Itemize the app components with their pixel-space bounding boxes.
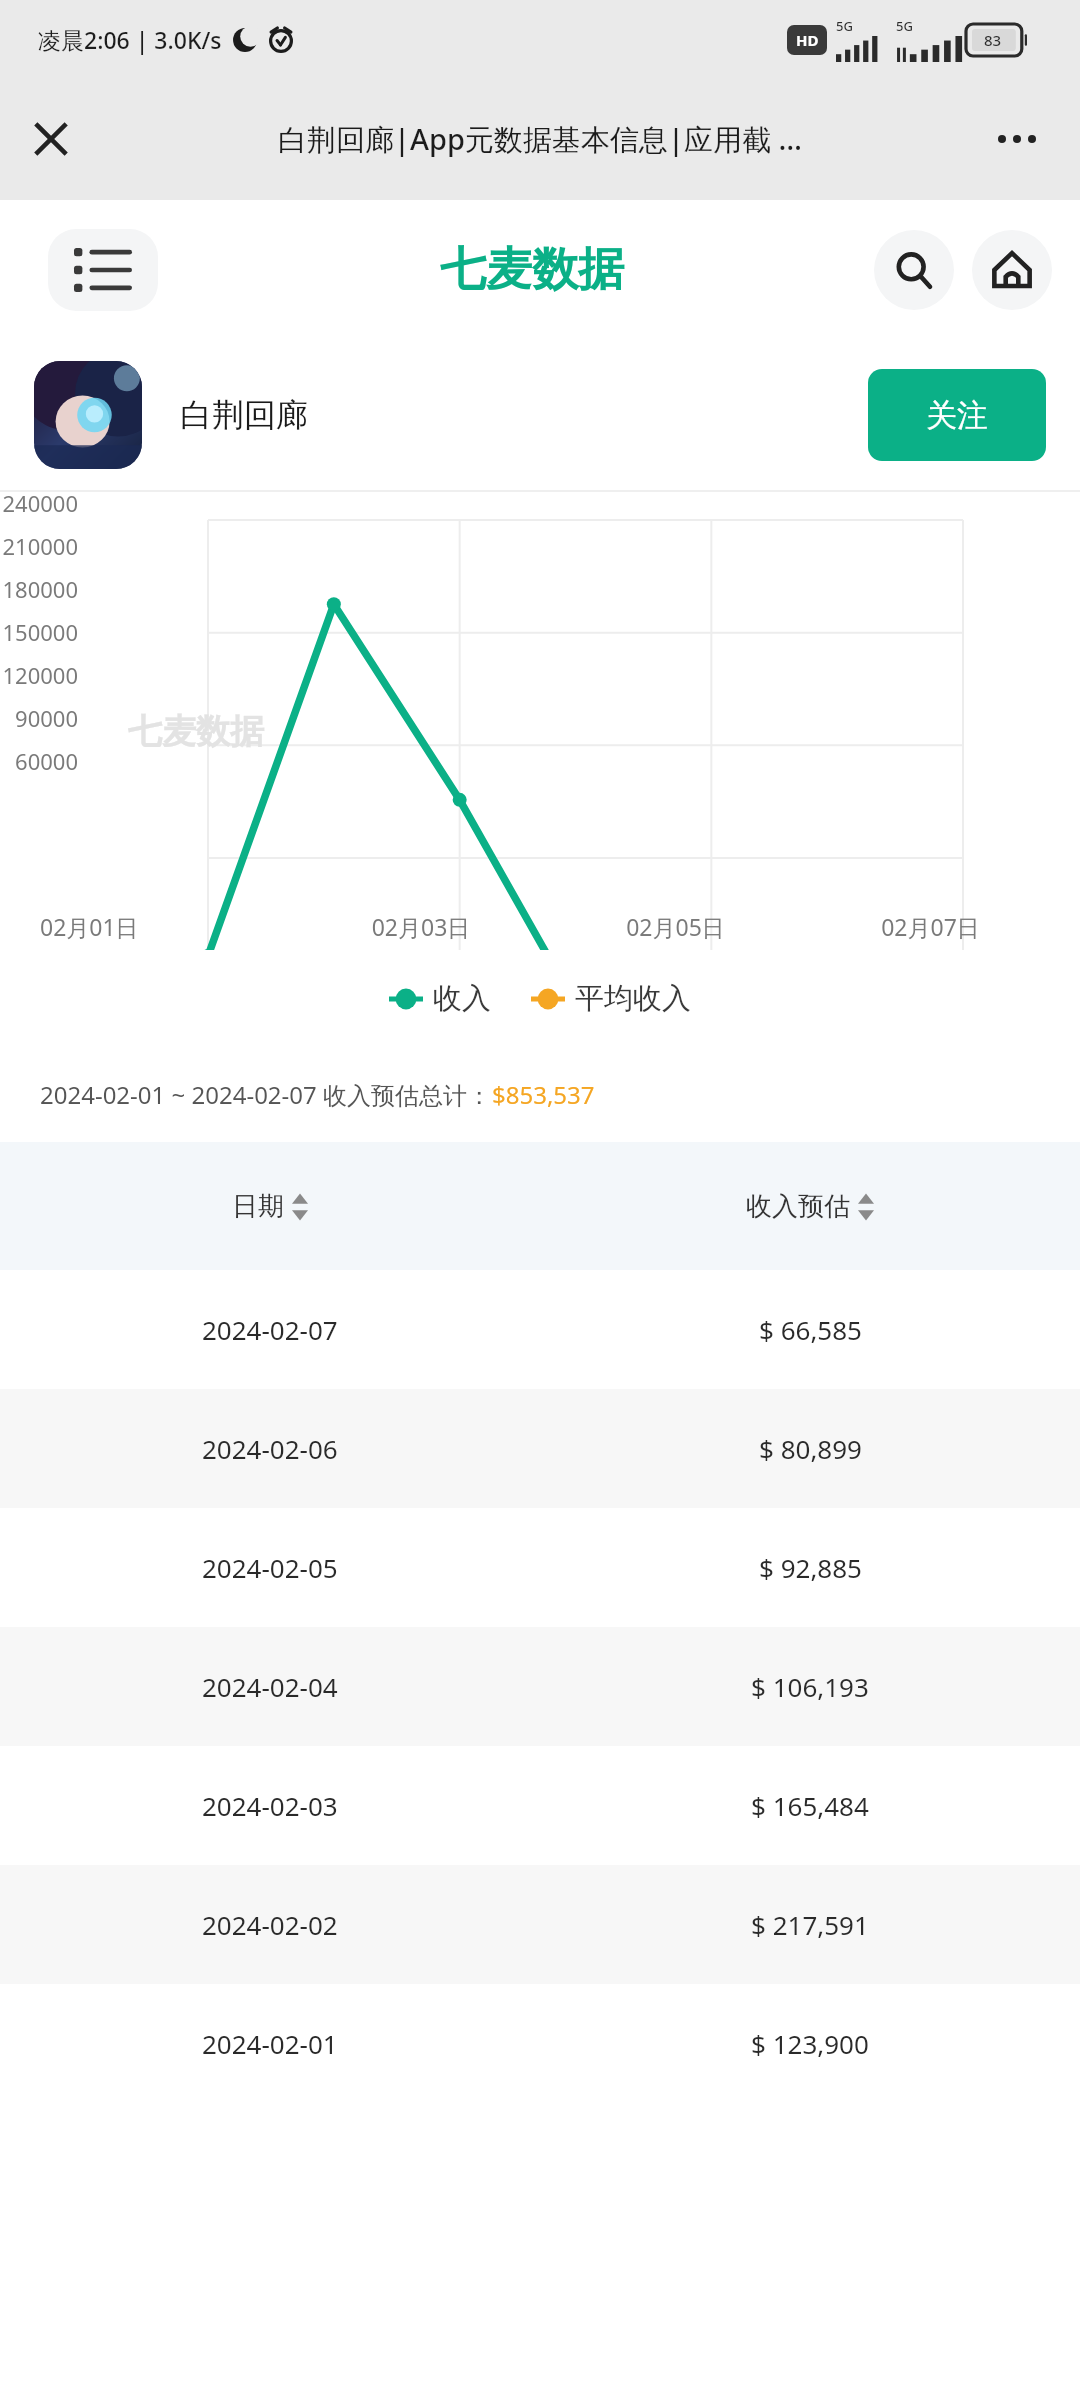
staticText: $ 217,591	[751, 1907, 869, 1942]
staticText: 2024-02-07	[202, 1312, 338, 1347]
staticText: $ 123,900	[751, 2026, 869, 2061]
staticText: 02月05日	[548, 911, 803, 942]
button[interactable]: 2024-02-02	[0, 1865, 1080, 1984]
button[interactable]: Search	[874, 230, 954, 310]
button[interactable]: Menu	[48, 229, 158, 311]
button[interactable]: 关注	[868, 369, 1046, 461]
staticText: 2024-02-03	[202, 1788, 338, 1823]
staticText: 90000	[0, 703, 78, 733]
staticText: 2024-02-06	[202, 1431, 338, 1466]
staticText: 180000	[0, 574, 78, 604]
staticText: 收入	[433, 980, 491, 1017]
staticText: 凌晨2:06 | 3.0K/s	[38, 24, 222, 55]
button[interactable]: 收入预估	[540, 1142, 1080, 1270]
staticText: $ 165,484	[751, 1788, 869, 1823]
button[interactable]: 2024-02-01	[0, 1984, 1080, 2103]
staticText: 七麦数据	[440, 241, 624, 299]
staticText: 平均收入	[575, 980, 691, 1017]
staticText: 收入预估	[746, 1190, 850, 1223]
staticText: 150000	[0, 617, 78, 647]
button[interactable]: 平均收入	[531, 980, 691, 1017]
staticText: 83	[984, 30, 1002, 50]
staticText: $ 92,885	[759, 1550, 862, 1585]
staticText: 5G	[896, 17, 913, 35]
button[interactable]: 日期	[0, 1142, 540, 1270]
staticText: 2024-02-01 ~ 2024-02-07 收入预估总计：	[40, 1078, 492, 1111]
button[interactable]: 2024-02-06	[0, 1389, 1080, 1508]
staticText: 2024-02-02	[202, 1907, 338, 1942]
staticText: $ 66,585	[759, 1312, 862, 1347]
staticText: 日期	[232, 1190, 284, 1223]
button[interactable]: 2024-02-04	[0, 1627, 1080, 1746]
button[interactable]: More options	[984, 110, 1050, 168]
staticText: 60000	[0, 746, 78, 776]
staticText: 2024-02-01	[202, 2026, 338, 2061]
staticText: 02月01日	[40, 911, 294, 942]
button[interactable]: 2024-02-03	[0, 1746, 1080, 1865]
staticText: 2024-02-04	[202, 1669, 338, 1704]
staticText: 关注	[926, 396, 988, 435]
button[interactable]: Close	[22, 110, 80, 168]
staticText: $853,537	[492, 1078, 595, 1111]
staticText: 120000	[0, 660, 78, 690]
staticText: 白荆回廊|App元数据基本信息|应用截 …	[278, 119, 802, 159]
button[interactable]: App icon	[34, 361, 142, 469]
staticText: 5G	[836, 17, 853, 35]
button[interactable]: 2024-02-05	[0, 1508, 1080, 1627]
staticText: 白荆回廊	[180, 395, 308, 435]
staticText: 02月07日	[803, 911, 1058, 942]
button[interactable]: 收入	[389, 980, 491, 1017]
staticText: 七麦数据	[128, 710, 264, 753]
button[interactable]: Home	[972, 230, 1052, 310]
staticText: 2024-02-05	[202, 1550, 338, 1585]
staticText: $ 106,193	[751, 1669, 869, 1704]
staticText: 02月03日	[294, 911, 548, 942]
button[interactable]: 2024-02-07	[0, 1270, 1080, 1389]
staticText: HD	[796, 30, 819, 50]
staticText: 240000	[0, 488, 78, 518]
staticText: $ 80,899	[759, 1431, 862, 1466]
staticText: 210000	[0, 531, 78, 561]
